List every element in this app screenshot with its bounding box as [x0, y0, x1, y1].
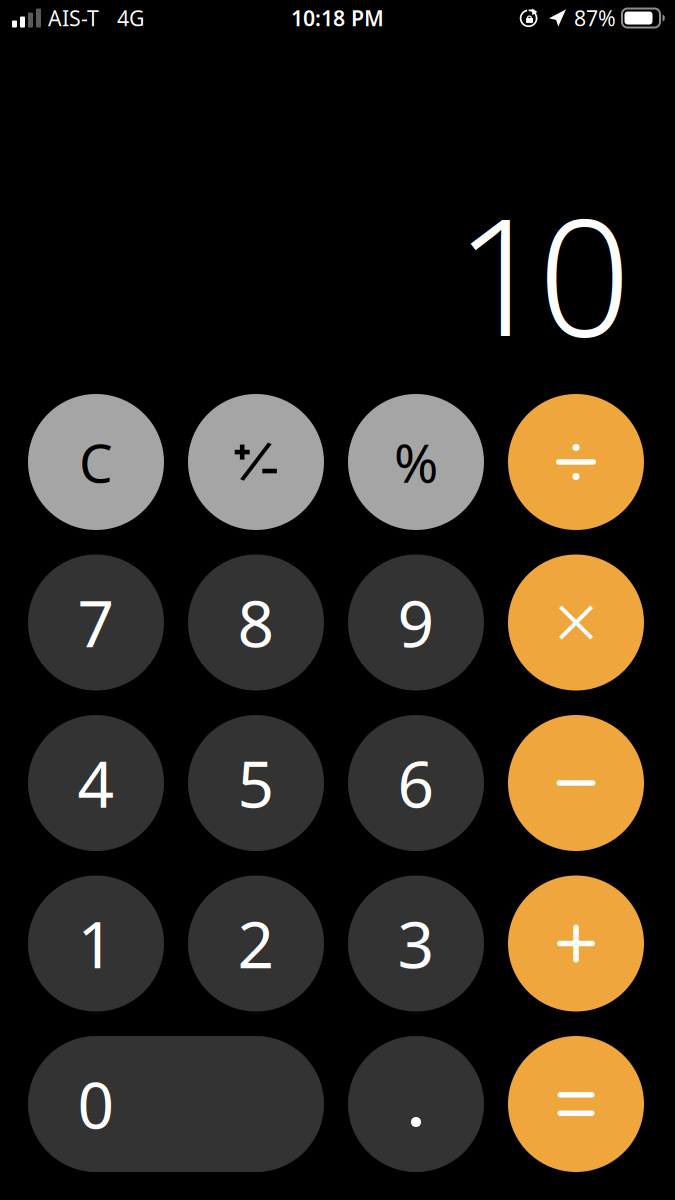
button[interactable]: Decimal point — [348, 1036, 484, 1172]
button[interactable]: 0 — [28, 1036, 324, 1172]
button[interactable]: Plus minus — [188, 394, 324, 530]
button[interactable]: Divide — [508, 394, 644, 530]
button[interactable]: 2 — [188, 875, 324, 1011]
staticText: 1 — [77, 901, 114, 986]
button[interactable]: 5 — [188, 715, 324, 851]
button[interactable]: Minus — [508, 715, 644, 851]
staticText: 8 — [237, 580, 274, 665]
staticText: 87% — [574, 4, 616, 32]
staticText: 7 — [77, 580, 114, 665]
staticText: 2 — [237, 901, 274, 986]
staticText: 10 — [455, 165, 631, 381]
staticText: AIS-T — [48, 4, 99, 32]
staticText: 6 — [397, 740, 434, 825]
staticText: 3 — [397, 901, 434, 986]
button[interactable]: 7 — [28, 554, 164, 690]
staticText: 0 — [77, 1061, 114, 1146]
staticText: C — [79, 427, 113, 497]
button[interactable]: Plus — [508, 875, 644, 1011]
button[interactable]: 3 — [348, 875, 484, 1011]
button[interactable]: 4 — [28, 715, 164, 851]
button[interactable]: Multiply — [508, 554, 644, 690]
staticText: 4G — [117, 4, 145, 32]
button[interactable]: 6 — [348, 715, 484, 851]
staticText: 10:18 PM — [291, 4, 384, 32]
button[interactable]: % — [348, 394, 484, 530]
button[interactable]: 9 — [348, 554, 484, 690]
button[interactable]: C — [28, 394, 164, 530]
staticText: 4 — [77, 740, 114, 825]
staticText: 5 — [237, 740, 274, 825]
button[interactable]: 1 — [28, 875, 164, 1011]
button[interactable]: Equals — [508, 1036, 644, 1172]
button[interactable]: 8 — [188, 554, 324, 690]
staticText: 9 — [397, 580, 434, 665]
staticText: % — [394, 427, 438, 497]
